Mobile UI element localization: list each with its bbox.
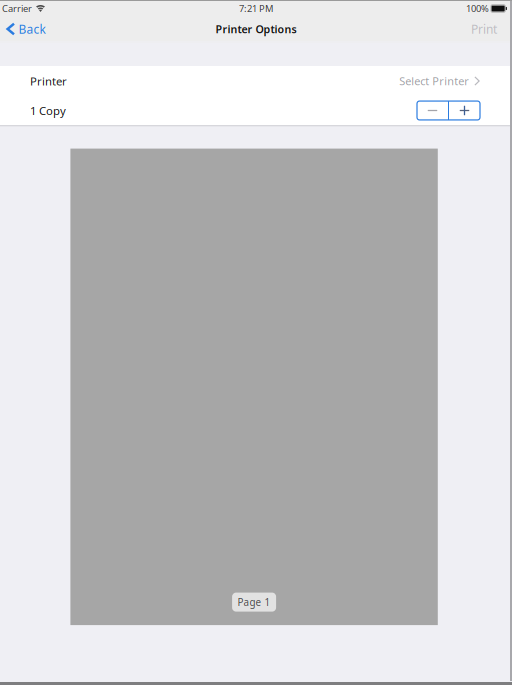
button[interactable]: Increase number of copies bbox=[449, 101, 480, 120]
staticText: Back bbox=[19, 21, 46, 37]
button[interactable]: Print bbox=[456, 17, 512, 41]
staticText: 100% bbox=[466, 2, 489, 15]
staticText: 1 Copy bbox=[30, 103, 66, 118]
staticText: Print bbox=[471, 21, 497, 37]
staticText: Carrier bbox=[2, 2, 32, 15]
staticText: Printer bbox=[30, 73, 67, 89]
staticText: Page 1 bbox=[238, 595, 271, 609]
staticText: Printer Options bbox=[215, 22, 296, 36]
button[interactable]: Printer bbox=[0, 66, 512, 96]
staticText: Select Printer bbox=[399, 74, 469, 88]
staticText: 7:21 PM bbox=[239, 2, 273, 15]
button[interactable]: Decrease number of copies bbox=[417, 101, 448, 120]
button[interactable]: Back bbox=[0, 17, 56, 41]
